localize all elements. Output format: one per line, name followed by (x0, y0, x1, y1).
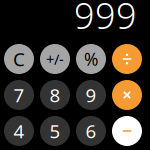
button[interactable]: 9 (76, 80, 106, 110)
staticText: +/- (46, 49, 64, 69)
button[interactable]: 6 (76, 116, 106, 146)
staticText: 8 (49, 83, 60, 107)
staticText: 4 (13, 119, 24, 143)
staticText: C (13, 47, 25, 71)
button[interactable]: Subtract (112, 116, 142, 146)
button[interactable]: % (76, 44, 106, 74)
button[interactable]: +/- (40, 44, 70, 74)
staticText: 5 (49, 119, 60, 143)
button[interactable]: 8 (40, 80, 70, 110)
button[interactable]: 7 (4, 80, 34, 110)
staticText: 9 (85, 83, 96, 107)
button[interactable]: 5 (40, 116, 70, 146)
button[interactable]: Divide (112, 44, 142, 74)
staticText: 6 (85, 119, 96, 143)
staticText: 7 (13, 83, 24, 107)
staticText: 999 (74, 0, 137, 39)
button[interactable]: Multiply (112, 80, 142, 110)
button[interactable]: C (4, 44, 34, 74)
staticText: % (84, 47, 98, 70)
button[interactable]: 4 (4, 116, 34, 146)
